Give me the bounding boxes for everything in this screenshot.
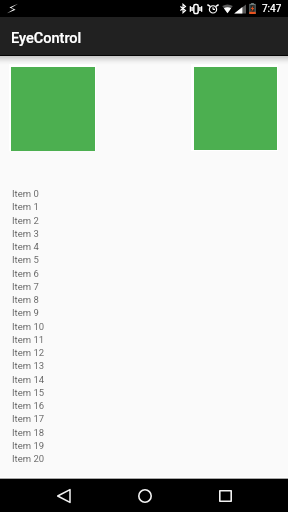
button[interactable]: Item 15 xyxy=(0,386,288,399)
staticText: Item 1 xyxy=(12,201,39,212)
button[interactable]: Item 0 xyxy=(0,187,288,200)
staticText: Item 3 xyxy=(12,228,39,239)
staticText: Item 18 xyxy=(12,427,45,438)
button[interactable]: Item 9 xyxy=(0,306,288,319)
button[interactable]: Item 19 xyxy=(0,439,288,452)
staticText: Item 15 xyxy=(12,387,45,398)
button[interactable]: Item 6 xyxy=(0,267,288,280)
button[interactable]: Item 7 xyxy=(0,280,288,293)
staticText: Item 17 xyxy=(12,413,45,424)
staticText: Item 11 xyxy=(12,334,45,345)
button[interactable]: Item 1 xyxy=(0,200,288,213)
button[interactable]: Recents xyxy=(197,479,253,512)
staticText: Item 14 xyxy=(12,374,45,385)
staticText: Item 9 xyxy=(12,307,39,318)
button[interactable]: Item 18 xyxy=(0,426,288,439)
button[interactable]: Item 10 xyxy=(0,320,288,333)
button[interactable] xyxy=(191,64,278,151)
staticText: EyeControl xyxy=(11,30,82,47)
staticText: Item 5 xyxy=(12,254,39,265)
button[interactable]: Item 14 xyxy=(0,373,288,386)
staticText: Item 13 xyxy=(12,360,45,371)
staticText: Item 16 xyxy=(12,400,45,411)
button[interactable]: Item 17 xyxy=(0,412,288,425)
staticText: Item 10 xyxy=(12,321,45,332)
staticText: Item 4 xyxy=(12,241,39,252)
button[interactable]: Item 12 xyxy=(0,346,288,359)
button[interactable]: Item 3 xyxy=(0,227,288,240)
staticText: 7:47 xyxy=(262,3,282,15)
staticText: Item 6 xyxy=(12,268,39,279)
button[interactable]: Back xyxy=(35,479,91,512)
staticText: Item 0 xyxy=(12,188,39,199)
staticText: Item 7 xyxy=(12,281,39,292)
staticText: Item 12 xyxy=(12,347,45,358)
staticText: Item 8 xyxy=(12,294,39,305)
button[interactable]: Item 13 xyxy=(0,359,288,372)
staticText: Item 2 xyxy=(12,215,39,226)
button[interactable]: Item 2 xyxy=(0,214,288,227)
button[interactable]: Home xyxy=(117,479,173,512)
button[interactable]: Item 4 xyxy=(0,240,288,253)
staticText: Item 20 xyxy=(12,453,45,464)
button[interactable]: Item 11 xyxy=(0,333,288,346)
button[interactable]: Item 16 xyxy=(0,399,288,412)
button[interactable]: Item 8 xyxy=(0,293,288,306)
button[interactable]: Item 5 xyxy=(0,253,288,266)
staticText: Item 19 xyxy=(12,440,45,451)
button[interactable] xyxy=(9,64,96,151)
button[interactable]: Item 20 xyxy=(0,452,288,465)
